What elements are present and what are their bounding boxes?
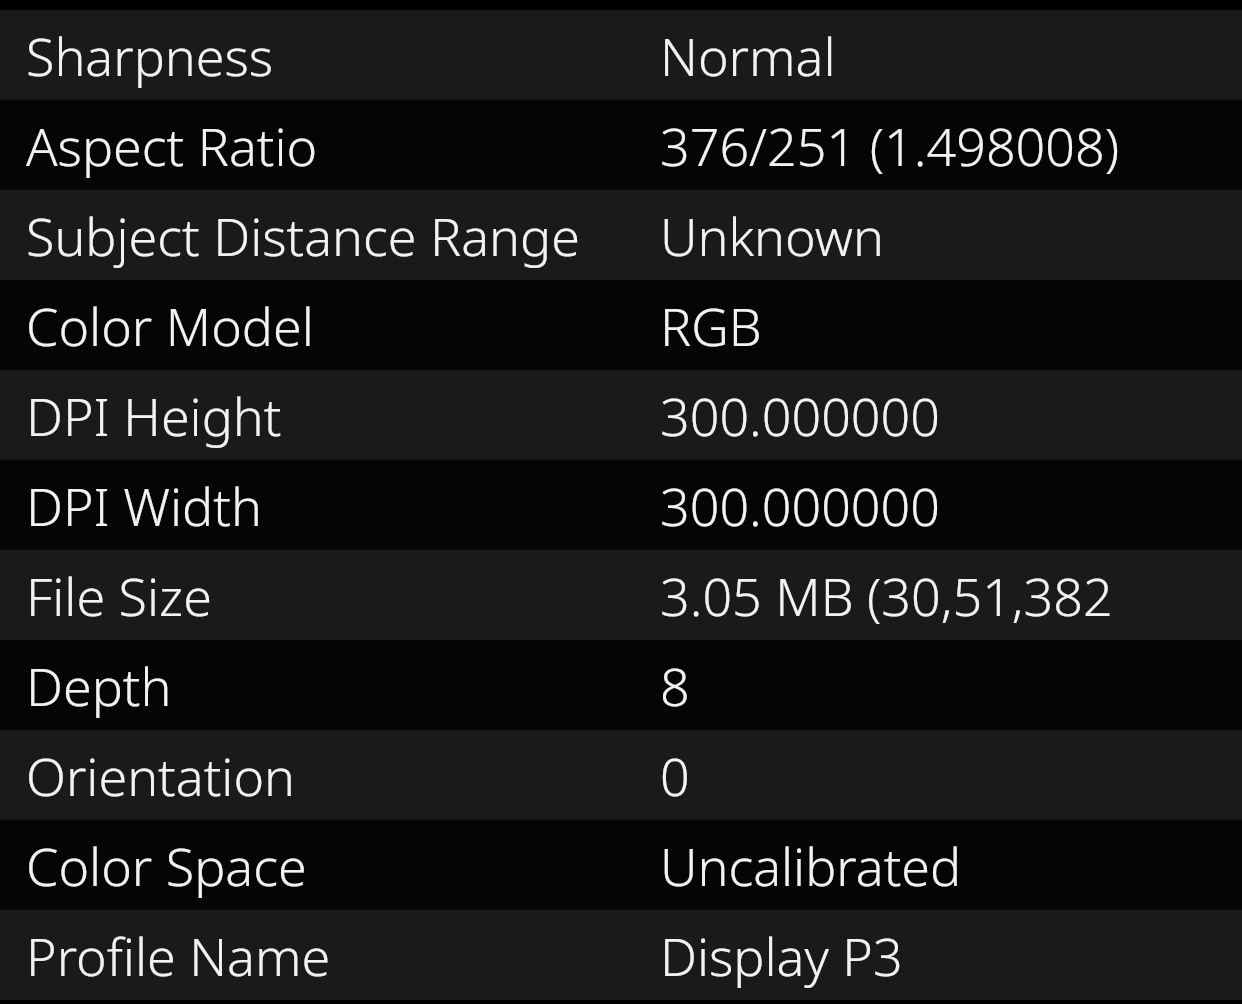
button[interactable]: File Size	[0, 550, 1242, 640]
staticText: Normal	[660, 20, 836, 91]
staticText: 376/251 (1.498008)	[660, 110, 1120, 181]
button[interactable]: Sharpness	[0, 10, 1242, 100]
staticText: DPI Width	[26, 470, 262, 541]
staticText: 3.05 MB (30,51,382 bytes)	[660, 560, 1234, 631]
staticText: Depth	[26, 650, 172, 721]
button[interactable]: DPI Width	[0, 460, 1242, 550]
staticText: File Size	[26, 560, 212, 631]
staticText: Sharpness	[26, 20, 274, 91]
staticText: Subject Distance Range	[26, 200, 580, 271]
staticText: Orientation	[26, 740, 295, 811]
button[interactable]: Color Model	[0, 280, 1242, 370]
staticText: 300.000000	[660, 380, 940, 451]
staticText: RGB	[660, 290, 762, 361]
button[interactable]: Subject Distance Range	[0, 190, 1242, 280]
staticText: 0	[660, 740, 690, 811]
staticText: Color Space	[26, 830, 307, 901]
staticText: Display P3	[660, 920, 903, 991]
staticText: Profile Name	[26, 920, 331, 991]
staticText: 300.000000	[660, 470, 940, 541]
staticText: DPI Height	[26, 380, 282, 451]
button[interactable]: Orientation	[0, 730, 1242, 820]
button[interactable]: Depth	[0, 640, 1242, 730]
staticText: 8	[660, 650, 690, 721]
button[interactable]: DPI Height	[0, 370, 1242, 460]
button[interactable]: Profile Name	[0, 910, 1242, 1000]
staticText: Color Model	[26, 290, 314, 361]
button[interactable]: Color Space	[0, 820, 1242, 910]
staticText: Uncalibrated	[660, 830, 962, 901]
staticText: Unknown	[660, 200, 884, 271]
staticText: Aspect Ratio	[26, 110, 318, 181]
button[interactable]: Aspect Ratio	[0, 100, 1242, 190]
